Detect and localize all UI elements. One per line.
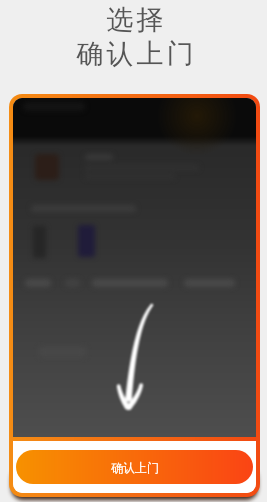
staticText: 选择 bbox=[105, 3, 165, 37]
staticText: 确认上门 bbox=[75, 37, 195, 71]
staticText: 确认上门 bbox=[111, 460, 159, 475]
button[interactable]: 确认上门 bbox=[16, 450, 253, 484]
